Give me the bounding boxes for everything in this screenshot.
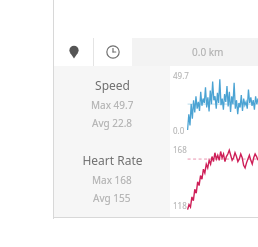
staticText: 0.0 km: [192, 45, 224, 59]
button[interactable]: Map: [54, 38, 93, 66]
staticText: Heart Rate: [82, 152, 143, 168]
staticText: Max 49.7: [91, 98, 134, 112]
staticText: Avg 155: [93, 191, 131, 205]
button[interactable]: Time: [94, 38, 132, 66]
staticText: 118: [173, 200, 187, 211]
staticText: Max 168: [92, 173, 132, 187]
button[interactable]: Heart Rate: [54, 140, 170, 217]
button[interactable]: Speed: [54, 66, 170, 140]
staticText: 168: [173, 144, 187, 155]
staticText: 49.7: [173, 70, 189, 81]
staticText: 0.0: [173, 125, 185, 136]
staticText: Avg 22.8: [92, 116, 133, 130]
staticText: Speed: [95, 77, 130, 93]
